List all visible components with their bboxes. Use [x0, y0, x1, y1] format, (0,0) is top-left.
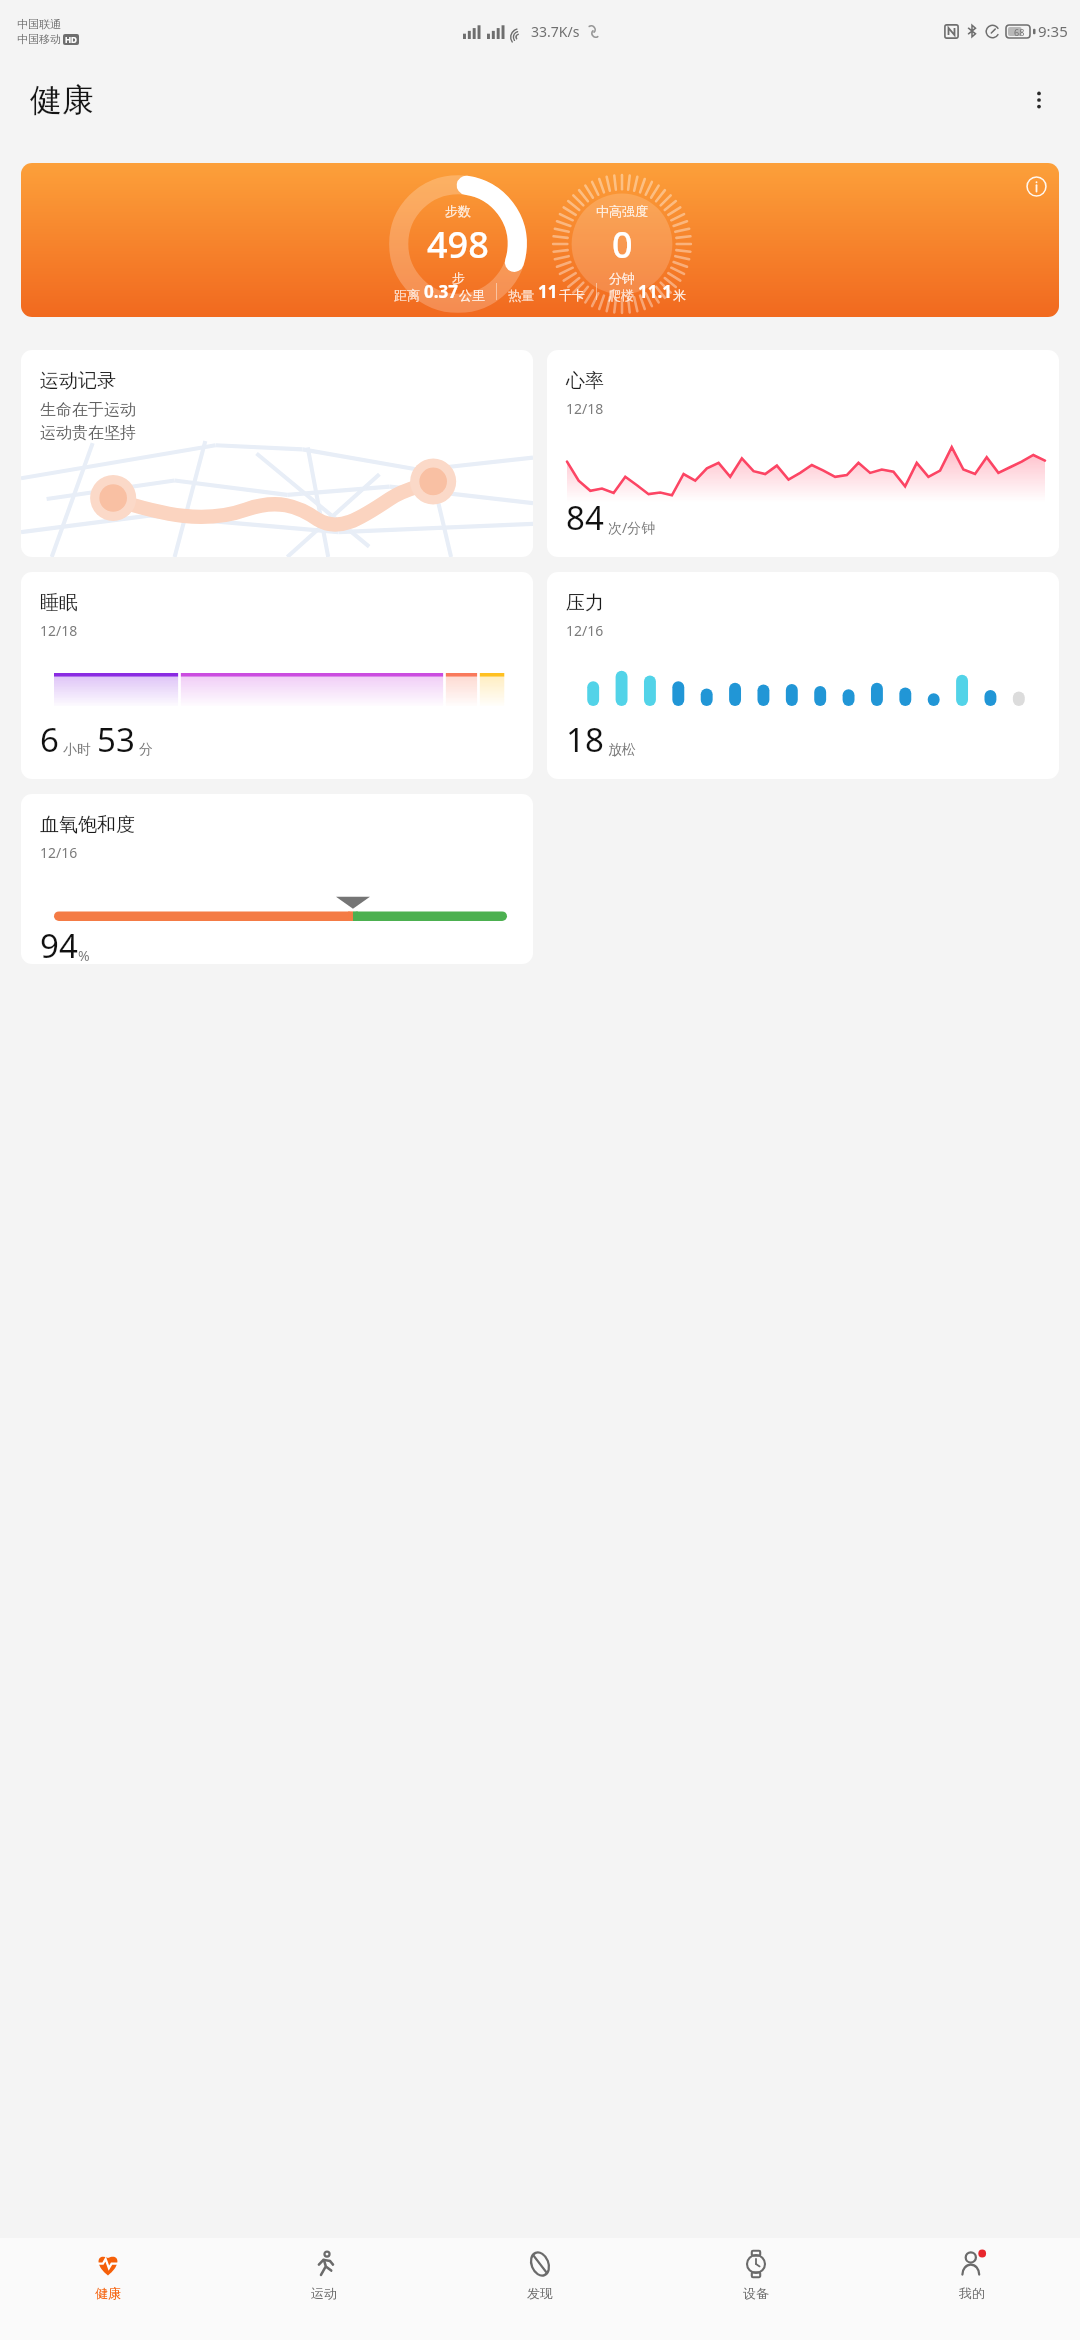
staticText: 分钟	[609, 270, 635, 286]
staticText: 运动记录	[40, 369, 116, 393]
staticText: 12/16	[40, 843, 78, 862]
staticText: 放松	[608, 741, 636, 759]
staticText: 健康	[30, 80, 94, 120]
staticText: 步	[452, 270, 465, 286]
button[interactable]: Info	[21, 163, 1059, 317]
staticText: 0	[612, 220, 633, 269]
staticText: 睡眠	[40, 591, 78, 615]
staticText: 公里	[459, 287, 485, 303]
button[interactable]: 睡眠	[21, 572, 533, 779]
button[interactable]: More options	[1016, 77, 1062, 123]
staticText: 血氧饱和度	[40, 813, 135, 837]
staticText: HD	[65, 34, 77, 45]
staticText: 33.7K/s	[531, 22, 580, 41]
staticText: 分	[139, 741, 153, 759]
button[interactable]: 设备	[648, 2238, 864, 2340]
staticText: 距离	[394, 287, 420, 303]
staticText: 运动	[311, 2285, 337, 2301]
staticText: 9:35	[1038, 21, 1068, 41]
staticText: 发现	[527, 2285, 553, 2301]
staticText: 我的	[959, 2285, 985, 2301]
staticText: 498	[427, 220, 489, 269]
staticText: 中国联通	[17, 17, 61, 31]
staticText: 中高强度	[596, 203, 648, 219]
staticText: 中国移动	[17, 32, 61, 46]
staticText: %	[78, 946, 90, 964]
button[interactable]: 健康	[0, 2238, 216, 2340]
staticText: 6	[40, 717, 59, 762]
button[interactable]: 运动	[216, 2238, 432, 2340]
staticText: 热量	[508, 287, 534, 303]
button[interactable]: 发现	[432, 2238, 648, 2340]
staticText: 94	[40, 923, 78, 964]
staticText: 健康	[95, 2285, 121, 2301]
staticText: 小时	[63, 741, 91, 759]
staticText: 0.37	[424, 280, 458, 303]
button[interactable]: 运动记录	[21, 350, 533, 557]
staticText: 12/18	[566, 399, 604, 418]
staticText: 12/18	[40, 621, 78, 640]
staticText: 压力	[566, 591, 604, 615]
staticText: 11.1	[638, 280, 672, 303]
staticText: 米	[673, 287, 686, 303]
staticText: 运动贵在坚持	[40, 423, 136, 443]
staticText: 设备	[743, 2285, 769, 2301]
staticText: 次/分钟	[608, 518, 656, 537]
button[interactable]: 血氧饱和度	[21, 794, 533, 964]
staticText: 18	[566, 717, 604, 762]
staticText: 生命在于运动	[40, 400, 136, 420]
staticText: 12/16	[566, 621, 604, 640]
button[interactable]: 心率	[547, 350, 1059, 557]
button[interactable]: Info	[1019, 169, 1053, 203]
staticText: 步数	[445, 203, 471, 219]
staticText: 心率	[566, 369, 604, 393]
button[interactable]: 我的	[864, 2238, 1080, 2340]
staticText: 53	[97, 717, 135, 762]
button[interactable]: 压力	[547, 572, 1059, 779]
staticText: 千卡	[559, 287, 585, 303]
staticText: 11	[538, 280, 558, 303]
staticText: 爬楼	[608, 287, 634, 303]
staticText: 84	[566, 495, 604, 540]
staticText: 68	[1014, 26, 1025, 38]
